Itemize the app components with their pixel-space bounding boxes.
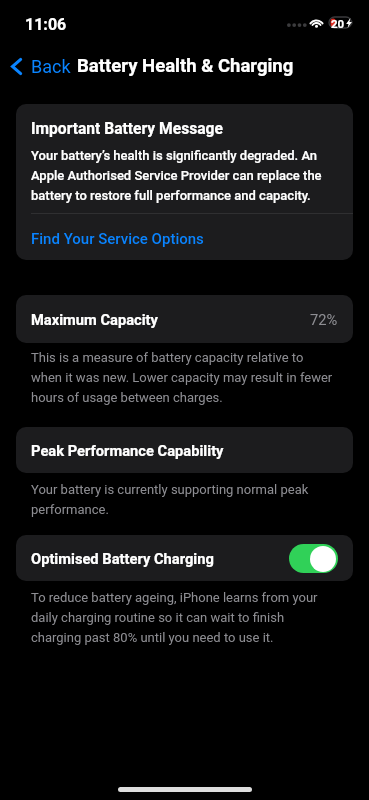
staticText: Optimised Battery Charging — [31, 550, 214, 567]
staticText: This is a measure of battery capacity re… — [31, 346, 334, 406]
staticText: Maximum Capacity — [31, 311, 158, 328]
staticText: 72% — [310, 311, 338, 328]
staticText: Peak Performance Capability — [31, 442, 224, 459]
button[interactable]: Peak Performance Capability — [16, 427, 353, 473]
staticText: Important Battery Message — [31, 120, 223, 138]
staticText: Back — [31, 56, 71, 77]
button[interactable]: Optimised Battery Charging — [16, 535, 353, 581]
button[interactable]: Find Your Service Options — [16, 214, 353, 260]
staticText: Battery Health & Charging — [77, 55, 294, 77]
other: Charging — [346, 18, 352, 28]
staticText: 20 — [331, 17, 345, 28]
staticText: Find Your Service Options — [31, 230, 204, 248]
staticText: To reduce battery ageing, iPhone learns … — [31, 586, 334, 646]
button[interactable]: Optimised Battery Charging toggle — [289, 544, 338, 573]
staticText: Your battery’s health is significantly d… — [31, 144, 338, 204]
staticText: 11:06 — [25, 15, 67, 34]
staticText: Your battery is currently supporting nor… — [31, 478, 334, 518]
button[interactable]: Back — [0, 50, 77, 83]
button[interactable]: Maximum Capacity — [16, 295, 353, 343]
